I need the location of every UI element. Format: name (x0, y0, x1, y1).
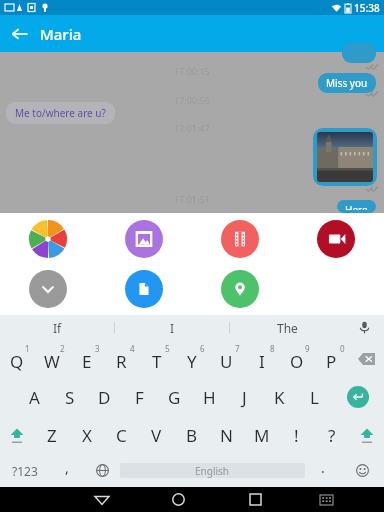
staticText: S (65, 386, 75, 409)
button[interactable]: O (279, 340, 314, 378)
button[interactable]: File (96, 268, 192, 310)
staticText: I (170, 320, 175, 336)
button[interactable]: G (157, 378, 192, 416)
staticText: 4 (130, 343, 135, 354)
staticText: 5 (165, 343, 170, 354)
button[interactable]: V (139, 416, 174, 454)
button[interactable]: K (262, 378, 297, 416)
button[interactable]: , (49, 454, 84, 487)
staticText: K (274, 386, 285, 409)
staticText: 17:00:15 (174, 65, 210, 77)
staticText: A (29, 386, 40, 409)
staticText: Miss you (326, 76, 368, 90)
button[interactable]: Emoji (341, 454, 384, 487)
button[interactable]: Backspace (349, 340, 384, 378)
button[interactable]: B (174, 416, 209, 454)
button[interactable]: W (34, 340, 69, 378)
button[interactable]: L (297, 378, 332, 416)
staticText: O (290, 350, 304, 373)
button[interactable]: Shift (0, 416, 34, 454)
staticText: Here (345, 203, 368, 210)
button[interactable]: R (104, 340, 139, 378)
button[interactable]: J (227, 378, 262, 416)
staticText: ? (328, 424, 336, 447)
staticText: E (82, 350, 92, 373)
staticText: . (321, 458, 325, 477)
button[interactable]: M (244, 416, 279, 454)
button[interactable]: Voice input (344, 315, 384, 340)
button[interactable]: S (52, 378, 87, 416)
button[interactable]: Z (34, 416, 69, 454)
button[interactable]: E (69, 340, 104, 378)
button[interactable]: ! (279, 416, 314, 454)
button[interactable]: Y (174, 340, 209, 378)
button[interactable]: Change language (84, 454, 120, 487)
staticText: I (259, 350, 265, 373)
button[interactable]: More (0, 268, 96, 310)
button[interactable]: I (115, 315, 229, 340)
staticText: 0 (340, 343, 345, 354)
staticText: D (98, 386, 111, 409)
staticText: G (168, 386, 181, 409)
button[interactable]: . (305, 454, 341, 487)
staticText: The (277, 320, 298, 336)
staticText: If (53, 320, 62, 336)
button[interactable] (313, 128, 377, 186)
staticText: W (44, 350, 60, 373)
button[interactable]: X (69, 416, 104, 454)
button[interactable]: ?123 (0, 454, 49, 487)
button[interactable]: Back (0, 15, 40, 52)
staticText: 9 (305, 343, 310, 354)
button[interactable]: Here (337, 200, 376, 213)
staticText: V (151, 424, 162, 447)
button[interactable]: Hide keyboard (294, 487, 358, 512)
button[interactable]: Location (192, 268, 288, 310)
button[interactable]: I (244, 340, 279, 378)
staticText: ! (294, 424, 299, 447)
button[interactable]: F (122, 378, 157, 416)
button[interactable]: D (87, 378, 122, 416)
staticText: J (242, 386, 247, 409)
button[interactable]: Enter (332, 378, 384, 416)
staticText: H (203, 386, 216, 409)
staticText: F (135, 386, 144, 409)
button[interactable]: Home (140, 487, 217, 512)
button[interactable]: Recent apps (217, 487, 294, 512)
staticText: L (310, 386, 319, 409)
button[interactable]: The (230, 315, 344, 340)
staticText: ?123 (12, 463, 38, 479)
button[interactable]: P (314, 340, 349, 378)
button[interactable]: N (209, 416, 244, 454)
staticText: R (116, 350, 127, 373)
button[interactable] (342, 43, 376, 63)
staticText: English (195, 464, 230, 478)
button[interactable]: T (139, 340, 174, 378)
staticText: 17:01:51 (174, 193, 210, 205)
button[interactable]: English (120, 454, 305, 487)
button[interactable]: Back (63, 487, 140, 512)
button[interactable]: Record video (288, 218, 384, 260)
staticText: 15:38 (354, 1, 380, 15)
button[interactable]: If (0, 315, 114, 340)
staticText: 2 (60, 343, 65, 354)
button[interactable]: Camera (0, 218, 96, 260)
staticText: N (220, 424, 233, 447)
staticText: 6 (200, 343, 205, 354)
staticText: Q (10, 350, 24, 373)
button[interactable]: H (192, 378, 227, 416)
button[interactable]: Q (0, 340, 34, 378)
button[interactable]: ? (314, 416, 349, 454)
staticText: T (152, 350, 162, 373)
staticText: X (82, 424, 92, 447)
button[interactable]: U (209, 340, 244, 378)
button[interactable]: Shift (349, 416, 384, 454)
button[interactable]: A (17, 378, 52, 416)
button[interactable]: C (104, 416, 139, 454)
button[interactable]: Miss you (318, 73, 376, 93)
staticText: U (220, 350, 233, 373)
staticText: Me to/where are u? (15, 106, 106, 120)
button[interactable]: Me to/where are u? (6, 102, 115, 124)
staticText: , (65, 458, 69, 477)
button[interactable]: Video (192, 218, 288, 260)
button[interactable]: Gallery (96, 218, 192, 260)
